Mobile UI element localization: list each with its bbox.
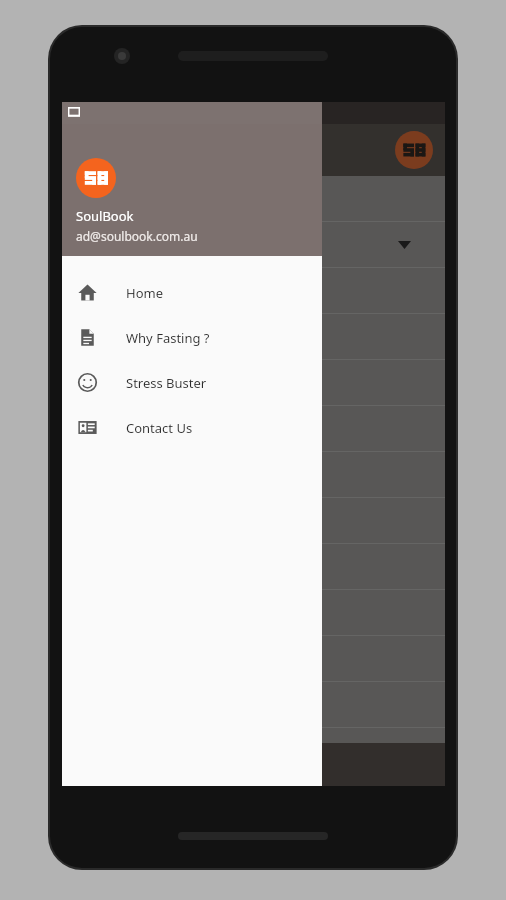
staticText: Stress Buster bbox=[126, 374, 207, 392]
staticText: ad@soulbook.com.au bbox=[76, 228, 198, 244]
button[interactable] bbox=[62, 452, 445, 498]
staticText: Home bbox=[126, 284, 163, 302]
button[interactable] bbox=[62, 590, 445, 636]
button[interactable] bbox=[62, 176, 445, 222]
button[interactable] bbox=[62, 544, 445, 590]
button[interactable] bbox=[62, 406, 445, 452]
button[interactable] bbox=[62, 314, 445, 360]
button[interactable] bbox=[62, 360, 445, 406]
button[interactable] bbox=[62, 268, 445, 314]
staticText: SoulBook bbox=[76, 207, 134, 225]
button[interactable]: SoulBook bbox=[62, 124, 322, 256]
staticText: Contact Us bbox=[126, 419, 193, 437]
button[interactable]: Why Fasting ? bbox=[62, 315, 322, 360]
button[interactable]: Contact Us bbox=[62, 405, 322, 450]
button[interactable] bbox=[62, 222, 445, 268]
button[interactable]: Stress Buster bbox=[62, 360, 322, 405]
button[interactable] bbox=[62, 636, 445, 682]
button[interactable]: SoulBook logo bbox=[395, 131, 433, 169]
button[interactable] bbox=[62, 682, 445, 728]
staticText: Why Fasting ? bbox=[126, 329, 210, 347]
button[interactable]: Home bbox=[62, 270, 322, 315]
button[interactable] bbox=[62, 498, 445, 544]
